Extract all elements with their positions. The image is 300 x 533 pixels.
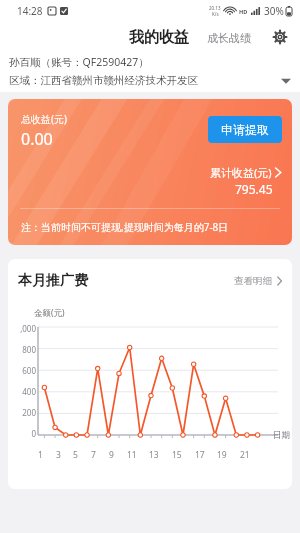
staticText: 20.13 <box>209 5 221 11</box>
button[interactable]: 区域：江西省赣州市赣州经济技术开发区 <box>9 74 291 87</box>
staticText: 800 <box>22 344 36 355</box>
staticText: 累计收益(元) <box>210 165 272 180</box>
staticText: 13 <box>149 449 159 461</box>
staticText: 400 <box>22 386 36 397</box>
staticText: 查看明细 <box>234 275 272 287</box>
button[interactable]: 查看明细 <box>234 275 282 287</box>
staticText: 本月推广费 <box>18 272 88 290</box>
staticText: 17 <box>195 449 205 461</box>
staticText: 600 <box>22 365 36 376</box>
staticText: 注：当前时间不可提现,提现时间为每月的7-8日 <box>21 220 229 234</box>
button[interactable]: Settings <box>269 26 291 48</box>
staticText: 0 <box>31 428 36 439</box>
staticText: K/s <box>212 11 219 17</box>
staticText: ,000 <box>20 323 36 334</box>
staticText: 5 <box>73 449 78 461</box>
staticText: 11 <box>127 449 137 461</box>
staticText: 7 <box>91 449 96 461</box>
staticText: 0.00 <box>21 128 53 150</box>
staticText: 申请提取 <box>221 122 269 137</box>
staticText: 我的收益 <box>129 28 189 47</box>
staticText: 19 <box>217 449 227 461</box>
staticText: 21 <box>240 449 250 461</box>
staticText: 15 <box>172 449 182 461</box>
staticText: 14:28 <box>17 4 43 18</box>
staticText: 9 <box>109 449 114 461</box>
staticText: 孙百顺（账号：QF2590427） <box>9 55 149 69</box>
staticText: 金额(元) <box>34 307 65 319</box>
button[interactable]: 累计收益(元) <box>210 165 281 197</box>
staticText: 日期 <box>273 430 290 441</box>
staticText: 200 <box>22 407 36 418</box>
staticText: 30% <box>264 4 284 18</box>
staticText: 区域：江西省赣州市赣州经济技术开发区 <box>9 74 281 87</box>
staticText: 3 <box>56 449 61 461</box>
staticText: HD <box>239 8 248 15</box>
button[interactable]: 申请提取 <box>208 116 282 143</box>
staticText: 1 <box>38 449 43 461</box>
staticText: 成长战绩 <box>207 31 251 45</box>
button[interactable]: 成长战绩 <box>207 31 251 45</box>
staticText: 总收益(元) <box>21 112 67 126</box>
staticText: 795.45 <box>235 181 273 197</box>
button[interactable]: 我的收益 <box>129 28 189 47</box>
